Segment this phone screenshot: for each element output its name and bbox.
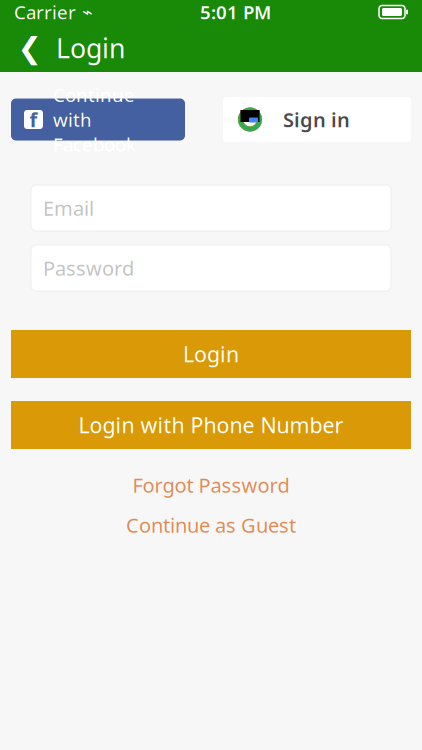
staticText: 5:01 PM <box>200 0 271 24</box>
staticText: Login <box>56 30 125 66</box>
staticText: ❮ <box>17 31 42 65</box>
button[interactable]: Login with Phone Number <box>11 401 411 449</box>
button[interactable]: Back <box>8 26 52 70</box>
button[interactable]: f <box>11 98 185 140</box>
staticText: Continue with Facebook <box>53 82 136 157</box>
staticText: Forgot Password <box>132 472 289 498</box>
staticText: Continue as Guest <box>126 512 296 538</box>
staticText: Login <box>183 340 239 368</box>
staticText: Sign in <box>283 106 350 133</box>
button[interactable]: Forgot Password <box>0 465 422 505</box>
button[interactable]: Continue as Guest <box>0 505 422 545</box>
staticText: Login with Phone Number <box>78 411 343 439</box>
staticText: Password <box>43 255 134 281</box>
button[interactable]: Sign in <box>223 97 411 142</box>
button[interactable]: Login <box>11 330 411 378</box>
staticText: ⌁ <box>76 2 92 22</box>
staticText: Carrier <box>14 0 76 24</box>
staticText: Email <box>43 195 94 221</box>
staticText: f <box>29 106 37 133</box>
